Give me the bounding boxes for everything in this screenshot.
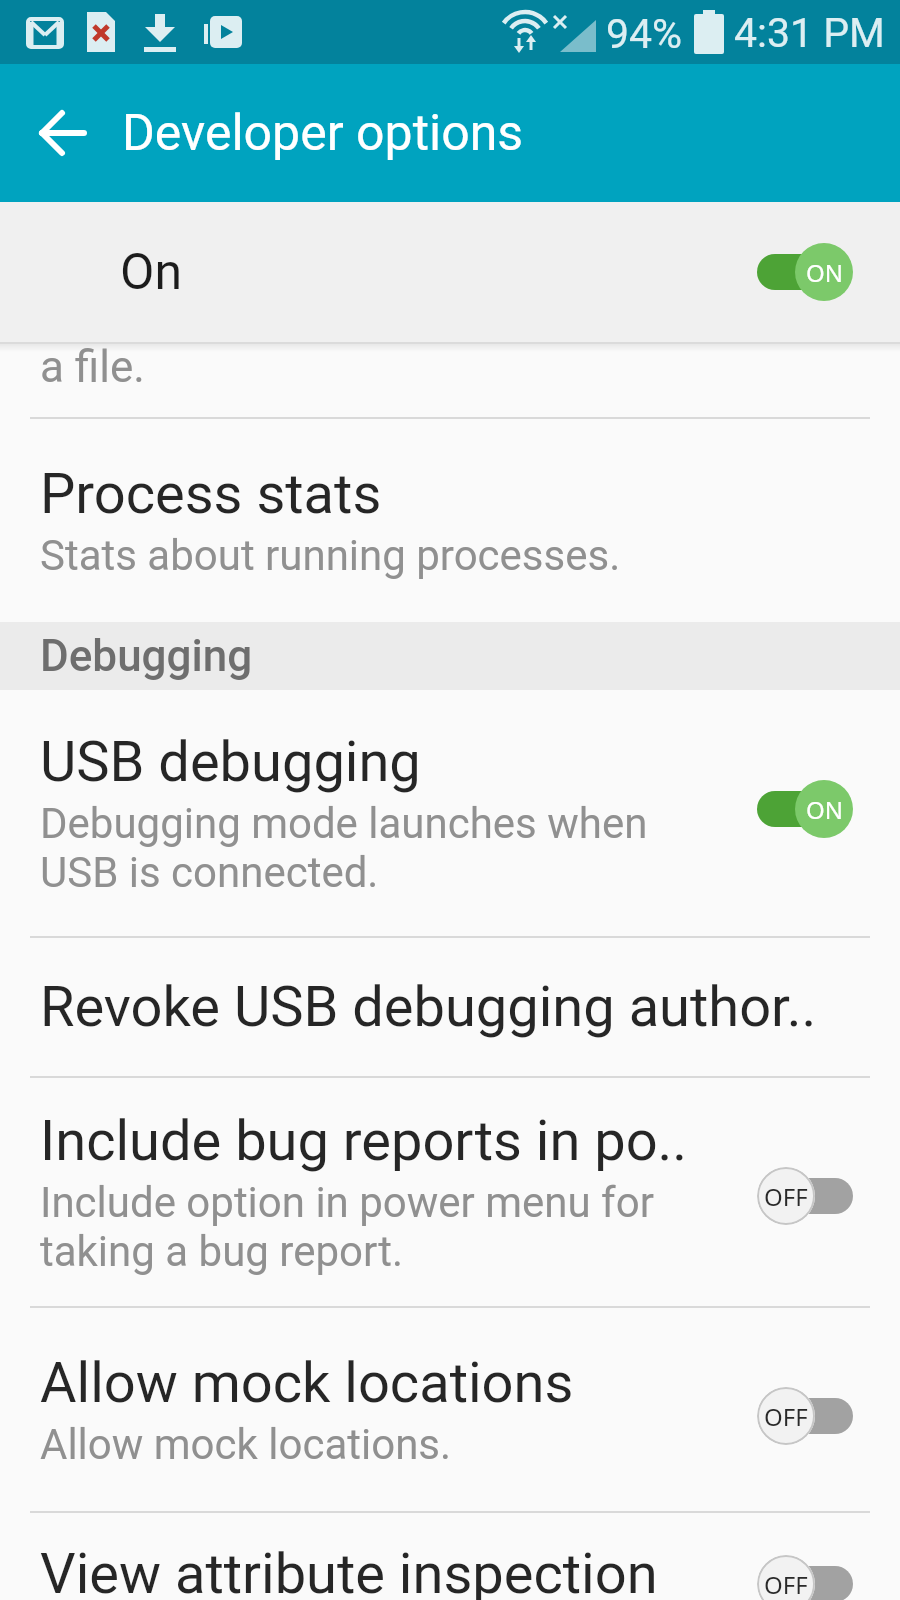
staticText: Include option in power menu for xyxy=(40,1178,654,1227)
button[interactable] xyxy=(24,111,96,155)
staticText: On xyxy=(120,243,183,302)
button[interactable]: OFF xyxy=(757,1555,853,1600)
button[interactable]: OFF xyxy=(757,1167,853,1225)
staticText: ON xyxy=(806,256,843,289)
staticText: taking a bug report. xyxy=(40,1227,404,1276)
staticText: Process stats xyxy=(40,461,382,527)
staticText: Include bug reports in po.. xyxy=(40,1108,688,1174)
staticText: Debugging mode launches when xyxy=(40,799,648,848)
staticText: a file. xyxy=(40,341,145,393)
button[interactable]: Process stats xyxy=(0,419,900,622)
button[interactable]: View attribute inspection xyxy=(0,1513,900,1600)
button[interactable]: Revoke USB debugging author.. xyxy=(0,938,900,1078)
staticText: 4:31 PM xyxy=(734,9,885,57)
staticText: USB debugging xyxy=(40,729,421,795)
staticText: ON xyxy=(806,793,843,826)
button[interactable]: OFF xyxy=(757,1387,853,1445)
staticText: OFF xyxy=(764,1180,808,1213)
staticText: Developer options xyxy=(122,104,524,163)
staticText: USB is connected. xyxy=(40,848,379,897)
staticText: Debugging xyxy=(40,630,253,682)
button[interactable]: ON xyxy=(757,780,853,838)
staticText: Stats about running processes. xyxy=(40,531,621,580)
staticText: OFF xyxy=(764,1400,808,1433)
button[interactable]: On xyxy=(0,202,900,342)
staticText: Revoke USB debugging author.. xyxy=(40,974,817,1040)
staticText: Allow mock locations. xyxy=(40,1420,452,1469)
button[interactable]: ON xyxy=(757,243,853,301)
button[interactable]: a file. xyxy=(0,352,900,419)
staticText: View attribute inspection xyxy=(40,1541,658,1600)
button[interactable]: Include bug reports in po.. xyxy=(0,1078,900,1308)
staticText: OFF xyxy=(764,1568,808,1600)
button[interactable]: Allow mock locations xyxy=(0,1308,900,1513)
staticText: 94% xyxy=(606,10,683,58)
button[interactable]: USB debugging xyxy=(0,690,900,938)
staticText: Allow mock locations xyxy=(40,1350,574,1416)
